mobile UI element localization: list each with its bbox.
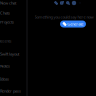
button[interactable]: Sparkles [53,0,58,5]
staticText: New chat [0,0,16,6]
staticText: Ideas [0,76,9,82]
button[interactable]: Settings [71,0,76,5]
button[interactable]: Generate [60,20,86,27]
staticText: Chats [0,10,10,16]
button[interactable]: Ideas [0,75,26,83]
button[interactable]: Swift layout [0,50,26,58]
button[interactable]: Notes [0,62,26,70]
staticText: Swift layout [0,51,19,57]
staticText: Notes [0,63,10,69]
button[interactable]: Chats [0,9,26,17]
staticText: Recents [0,38,11,44]
button[interactable]: New chat [0,0,26,7]
button[interactable]: New chat [59,0,64,5]
staticText: Generate [67,21,83,27]
staticText: Something you could say here now [34,14,93,20]
staticText: Projects [0,19,14,25]
button[interactable]: More [77,0,82,5]
button[interactable]: Render pass [0,87,26,95]
button[interactable]: Search [65,0,70,5]
button[interactable]: Projects [0,18,26,26]
staticText: Render pass [0,88,21,94]
